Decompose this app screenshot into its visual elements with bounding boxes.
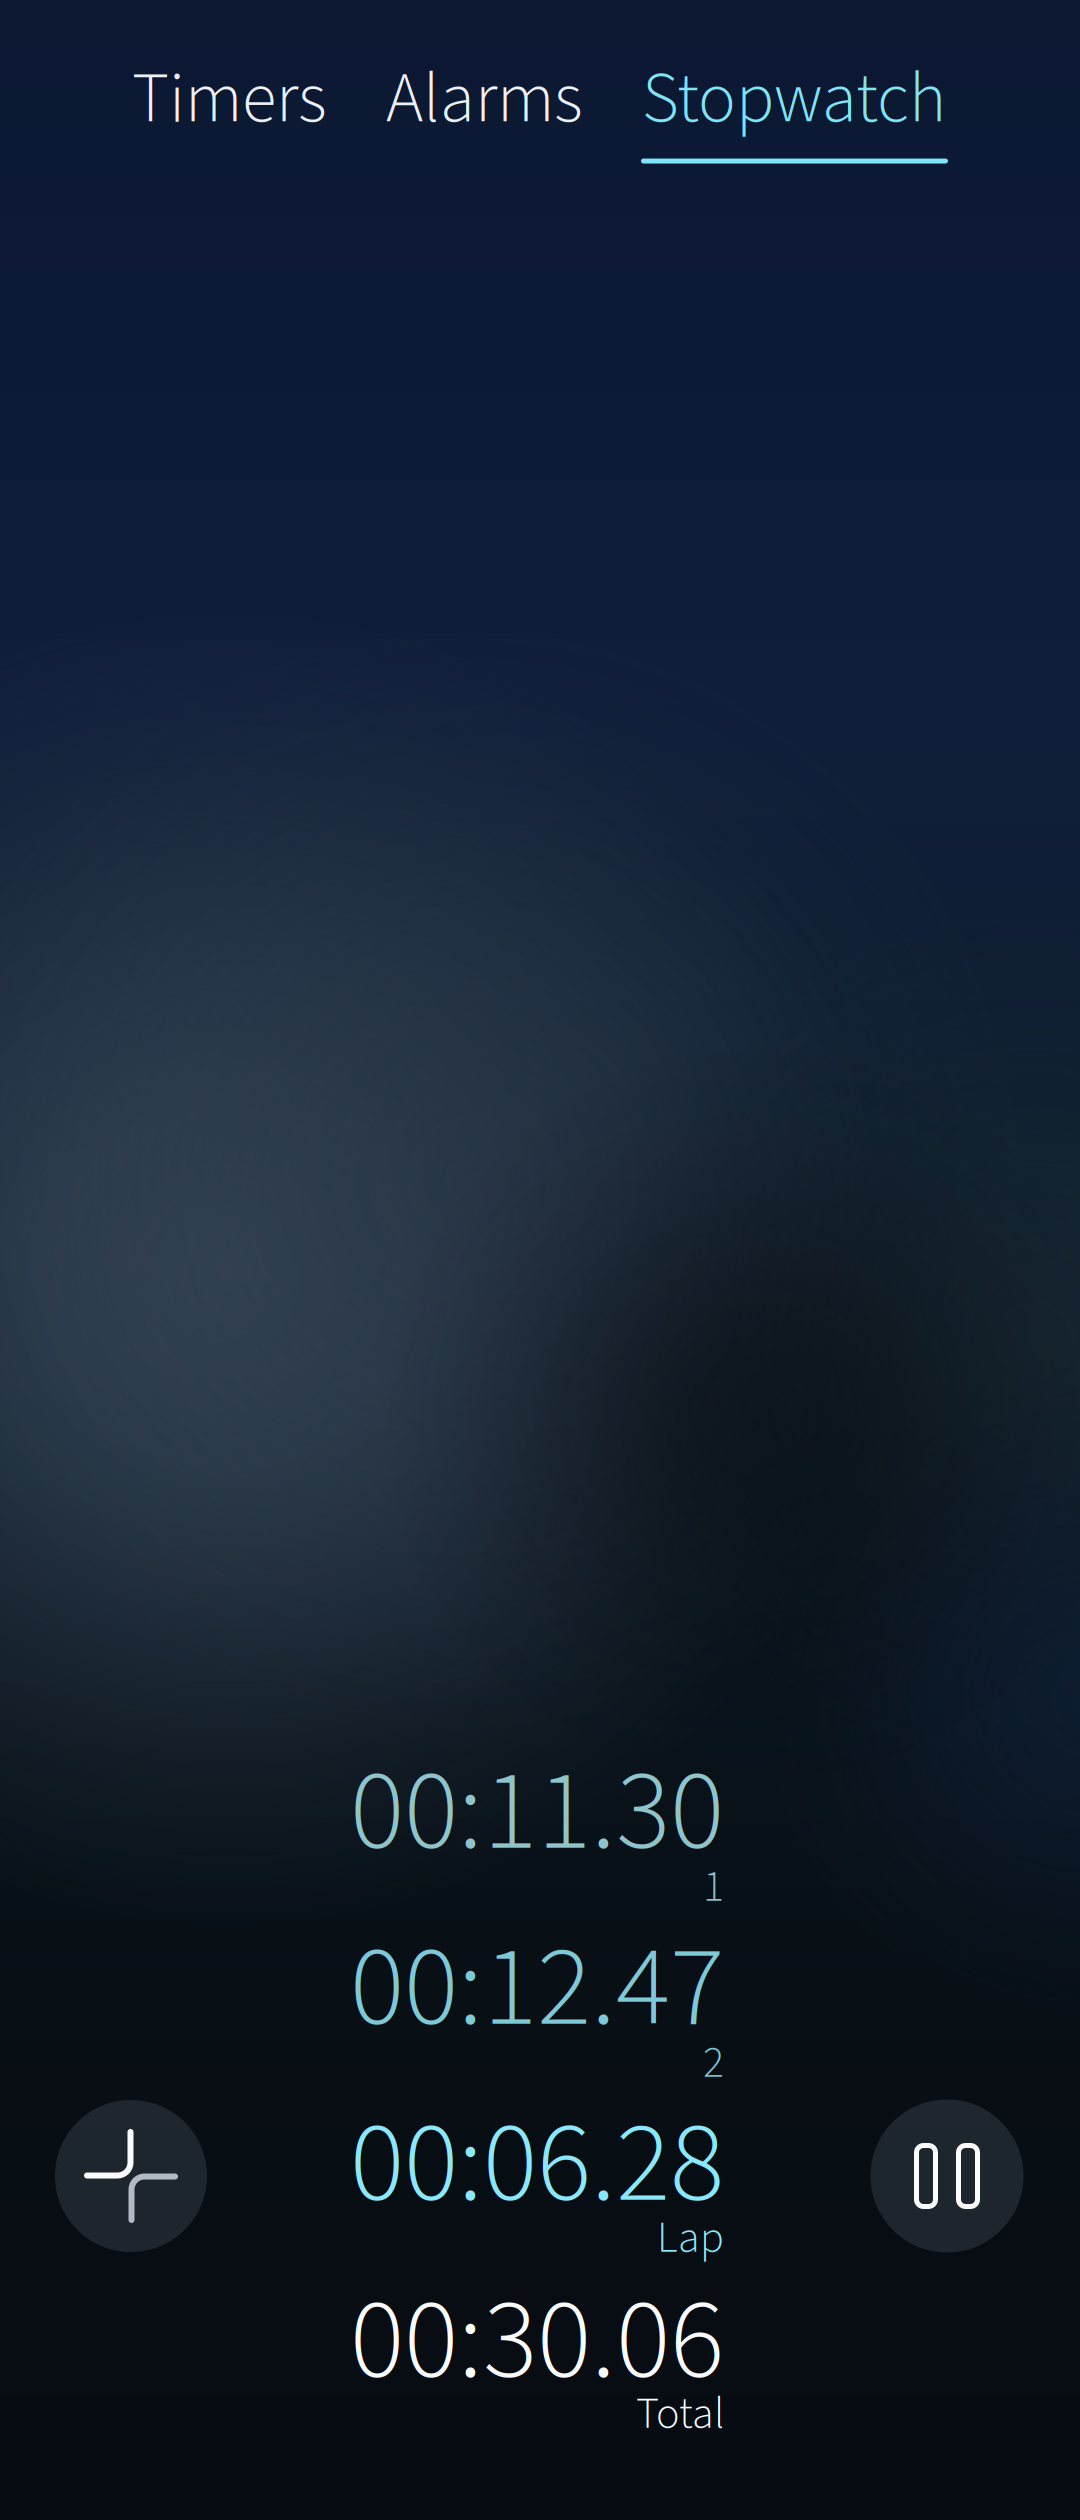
staticText: Alarms (386, 49, 583, 149)
staticText: Timers (132, 49, 327, 149)
button[interactable]: Pause (870, 2099, 1023, 2252)
button[interactable]: Alarms (386, 48, 583, 150)
staticText: 00:11.30 (350, 1732, 724, 1893)
button[interactable]: Lap (55, 2100, 207, 2252)
staticText: 00:06.28 (350, 2084, 724, 2245)
button[interactable]: Timers (132, 48, 327, 150)
staticText: 00:30.06 (350, 2261, 724, 2422)
button[interactable]: Stopwatch (641, 158, 948, 163)
staticText: Total (636, 2383, 724, 2445)
staticText: 1 (703, 1856, 724, 1918)
staticText: Stopwatch (642, 49, 946, 149)
button[interactable]: Stopwatch (642, 48, 946, 150)
staticText: 00:12.47 (350, 1908, 724, 2069)
staticText: 2 (703, 2032, 724, 2094)
staticText: Lap (657, 2207, 724, 2269)
